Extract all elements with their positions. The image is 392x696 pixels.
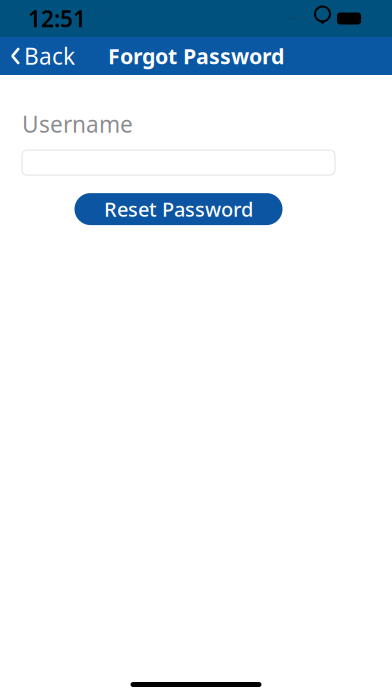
staticText: Reset Password: [104, 196, 253, 222]
staticText: Username: [22, 109, 133, 139]
button[interactable]: Reset Password: [74, 193, 282, 225]
staticText: Forgot Password: [108, 42, 284, 70]
staticText: Back: [24, 41, 75, 71]
button[interactable]: Back: [0, 33, 87, 79]
staticText: 12:51: [28, 3, 86, 33]
